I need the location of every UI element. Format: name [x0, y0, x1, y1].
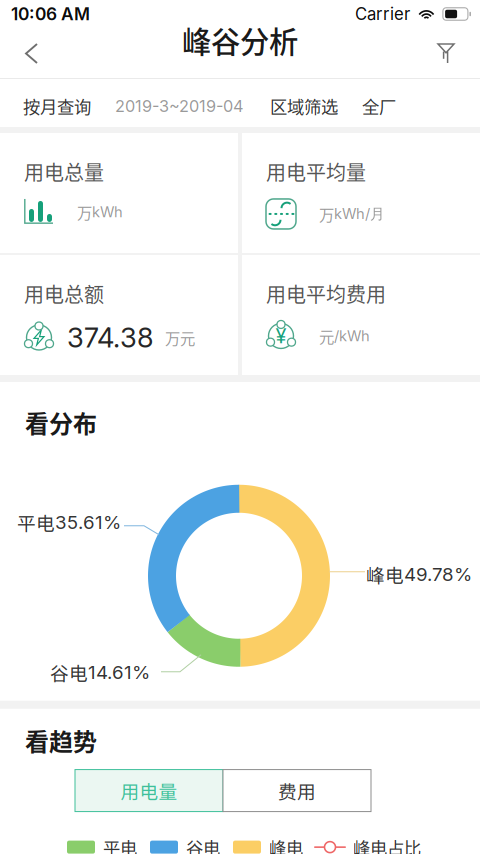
staticText: 万元 [165, 326, 195, 349]
staticText: 用电平均费用 [266, 279, 386, 308]
staticText: 看分布 [25, 405, 97, 440]
staticText: 按月查询 [23, 93, 91, 119]
staticText: Carrier [355, 4, 410, 24]
staticText: 用电平均量 [266, 157, 366, 186]
staticText: 2019-3~2019-04 [115, 96, 244, 116]
staticText: 谷电 [50, 659, 88, 686]
staticText: 35.61% [55, 511, 121, 534]
staticText: 区域筛选 [270, 93, 338, 119]
staticText: /kWh [334, 327, 370, 345]
staticText: 用电总量 [24, 157, 104, 186]
staticText: 10:06 AM [11, 3, 90, 24]
staticText: ¥ [275, 324, 286, 348]
staticText: kWh/月 [334, 205, 385, 223]
staticText: 万 [319, 203, 334, 225]
button[interactable]: 全厂 [338, 93, 396, 119]
staticText: 49.78% [404, 563, 472, 586]
staticText: 峰谷分析 [182, 19, 298, 61]
staticText: 元 [319, 325, 334, 347]
staticText: 用电总额 [24, 279, 104, 308]
staticText: 万 [77, 201, 92, 223]
staticText: 平电 [103, 835, 137, 854]
staticText: 费用 [278, 777, 316, 804]
staticText: 峰电 [269, 835, 303, 854]
staticText: 14.61% [88, 661, 150, 684]
staticText: 用电量 [120, 777, 177, 804]
button[interactable]: 区域筛选 [244, 93, 338, 119]
button[interactable]: 用电量 [75, 770, 223, 812]
button[interactable]: Back [0, 32, 55, 75]
staticText: 峰电占比 [353, 835, 421, 854]
staticText: 峰电 [366, 561, 404, 588]
staticText: 看趋势 [25, 723, 97, 758]
staticText: kWh [92, 203, 123, 221]
button[interactable]: 2019-3~2019-04 [91, 96, 244, 116]
button[interactable]: 按月查询 [23, 93, 91, 119]
button[interactable]: Filter [420, 32, 480, 75]
staticText: 平电 [17, 509, 55, 536]
staticText: 谷电 [186, 835, 220, 854]
button[interactable]: 费用 [223, 770, 371, 812]
staticText: 全厂 [362, 93, 396, 119]
staticText: 374.38 [67, 321, 154, 354]
